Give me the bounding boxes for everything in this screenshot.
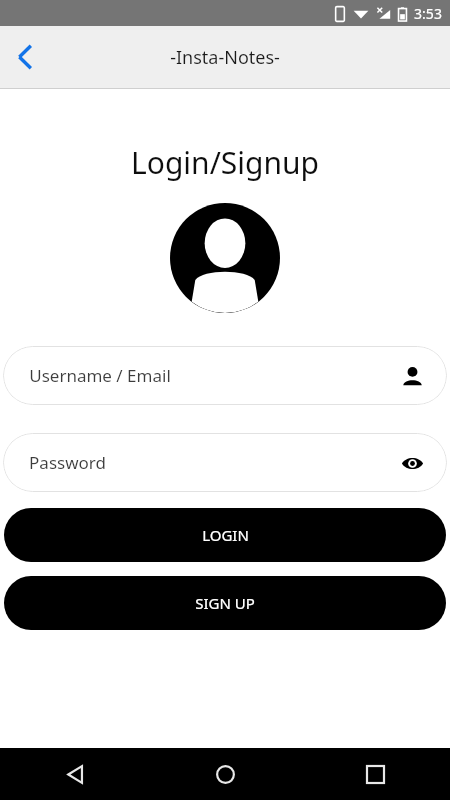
staticText: -Insta-Notes-: [170, 45, 280, 70]
staticText: Password: [29, 451, 106, 474]
button[interactable]: Account: [397, 361, 427, 391]
button[interactable]: Password: [3, 433, 447, 492]
button[interactable]: Back: [0, 748, 150, 800]
button[interactable]: LOGIN: [4, 508, 446, 562]
staticText: SIGN UP: [195, 593, 255, 613]
other: Profile picture: [170, 203, 280, 313]
button[interactable]: Back: [0, 31, 52, 83]
staticText: LOGIN: [202, 525, 249, 545]
button[interactable]: Recent apps: [300, 748, 450, 800]
staticText: 3:53: [414, 4, 442, 23]
staticText: Username / Email: [29, 364, 171, 387]
staticText: Login/Signup: [131, 142, 319, 183]
button[interactable]: Username / Email: [3, 346, 447, 405]
button[interactable]: Home: [150, 748, 300, 800]
button[interactable]: SIGN UP: [4, 576, 446, 630]
button[interactable]: Show password: [397, 448, 427, 478]
